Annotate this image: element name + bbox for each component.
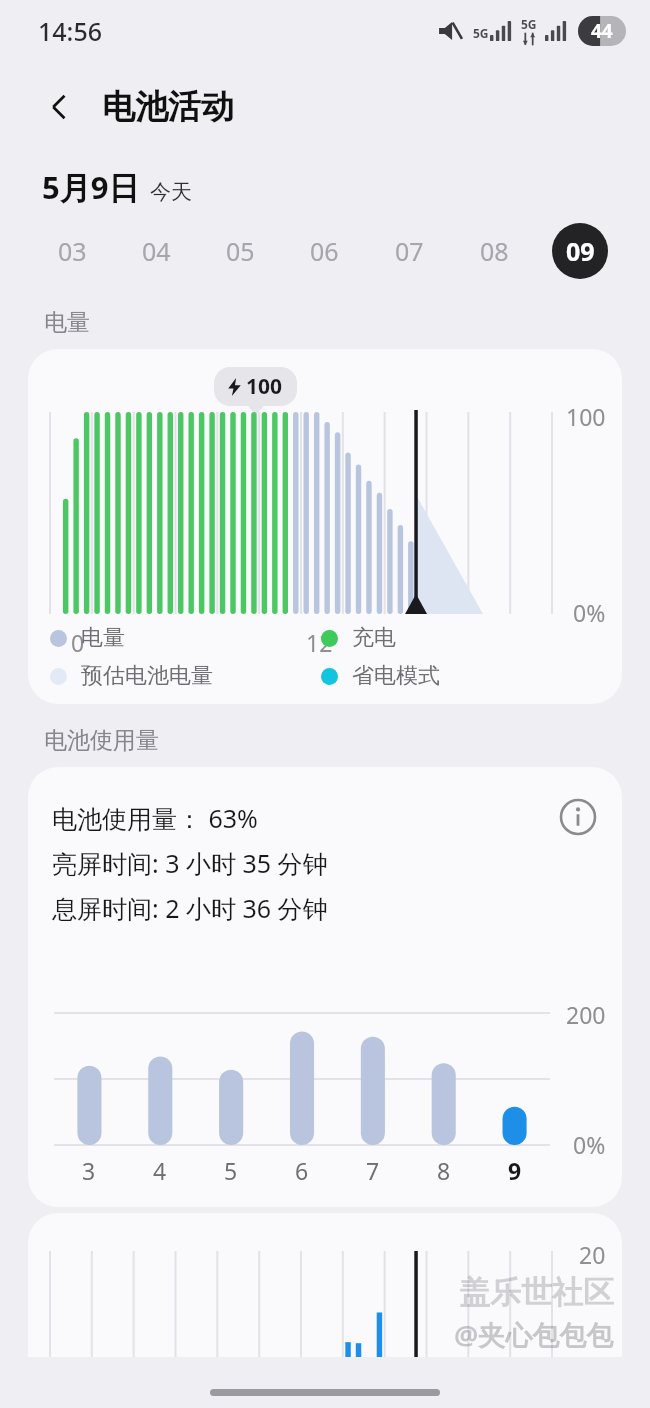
button[interactable]: 信息 <box>554 793 602 841</box>
button[interactable]: 06 <box>282 220 367 282</box>
staticText: 电池活动 <box>102 86 234 128</box>
staticText: 电池使用量 <box>44 726 159 755</box>
button[interactable]: 返回 <box>36 83 84 131</box>
staticText: 100 <box>246 372 283 401</box>
staticText: 8 <box>437 1155 451 1186</box>
button[interactable]: 20 <box>28 1213 622 1357</box>
staticText: 07 <box>395 234 424 268</box>
staticText: 电量 <box>44 308 90 337</box>
staticText: 4 <box>153 1155 167 1186</box>
staticText: 电池使用量： 63% <box>52 801 258 835</box>
staticText: 亮屏时间: 3 小时 35 分钟 <box>52 846 328 880</box>
button[interactable]: 08 <box>452 220 537 282</box>
staticText: 100 <box>566 401 606 432</box>
staticText: 09 <box>566 234 595 268</box>
staticText: 0 <box>71 627 85 658</box>
staticText: 9 <box>508 1155 522 1186</box>
staticText: 200 <box>566 999 606 1030</box>
staticText: 5 <box>224 1155 238 1186</box>
staticText: 12 <box>306 627 333 658</box>
staticText: 今天 <box>150 179 192 205</box>
button[interactable]: 电池使用量： 63% <box>28 767 622 1207</box>
button[interactable]: 09 <box>537 220 622 282</box>
staticText: 盖乐世社区 <box>459 1273 614 1312</box>
staticText: 5G <box>473 25 489 41</box>
staticText: 14:56 <box>38 14 103 48</box>
staticText: 3 <box>82 1155 96 1186</box>
button[interactable]: 05 <box>198 220 282 282</box>
staticText: 息屏时间: 2 小时 36 分钟 <box>52 891 328 925</box>
staticText: 7 <box>366 1155 380 1186</box>
button[interactable]: 07 <box>367 220 452 282</box>
staticText: @夹心包包包 <box>454 1316 614 1353</box>
staticText: 05 <box>226 234 255 268</box>
staticText: 08 <box>480 234 509 268</box>
staticText: 省电模式 <box>352 662 440 690</box>
staticText: 5G <box>521 16 537 32</box>
staticText: 04 <box>142 234 171 268</box>
staticText: 44 <box>591 18 613 44</box>
button[interactable]: 100 <box>28 349 622 704</box>
staticText: 充电 <box>352 624 396 652</box>
staticText: 6 <box>295 1155 309 1186</box>
staticText: 20 <box>579 1239 606 1270</box>
staticText: 0% <box>573 597 606 628</box>
staticText: 预估电池电量 <box>81 662 213 690</box>
staticText: 0% <box>573 1129 606 1160</box>
staticText: 03 <box>58 234 87 268</box>
staticText: 06 <box>310 234 339 268</box>
staticText: 电量 <box>81 624 125 652</box>
button[interactable]: 03 <box>30 220 114 282</box>
staticText: 5月9日 <box>42 166 140 208</box>
button[interactable]: 04 <box>114 220 198 282</box>
